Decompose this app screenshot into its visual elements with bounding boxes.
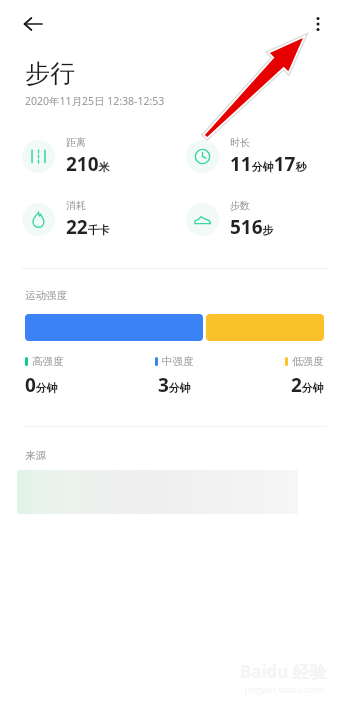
staticText: 步数 (230, 199, 250, 212)
staticText: 低强度 (292, 355, 324, 368)
staticText: 步行 (25, 58, 75, 89)
button[interactable] (17, 470, 298, 514)
staticText: 时长 (230, 136, 250, 149)
staticText: 高强度 (32, 355, 64, 368)
staticText: 2020年11月25日 12:38-12:53 (25, 94, 165, 108)
staticText: 22千卡 (66, 214, 110, 240)
staticText: 消耗 (66, 199, 86, 212)
button[interactable]: 高强度 (25, 355, 124, 398)
button[interactable]: 低强度 (224, 355, 324, 398)
button[interactable]: 时长 (186, 136, 349, 177)
staticText: 来源 (25, 449, 46, 462)
button[interactable]: 距离 (22, 136, 174, 177)
staticText: 210米 (66, 151, 110, 177)
staticText: 运动强度 (25, 289, 67, 302)
button[interactable]: 步数 (186, 199, 349, 240)
staticText: 2分钟 (291, 372, 324, 398)
staticText: Baidu 经验 (240, 660, 327, 683)
button[interactable]: 中强度 (124, 355, 224, 398)
staticText: 0分钟 (25, 372, 58, 398)
button[interactable]: 消耗 (22, 199, 174, 240)
staticText: 距离 (66, 136, 86, 149)
staticText: 3分钟 (158, 372, 191, 398)
staticText: 中强度 (162, 355, 194, 368)
staticText: 11分钟17秒 (230, 151, 307, 177)
staticText: 516步 (230, 214, 274, 240)
button[interactable]: More options (299, 5, 337, 43)
button[interactable]: Back (14, 5, 52, 43)
staticText: jingyan.baidu.com (245, 683, 323, 695)
